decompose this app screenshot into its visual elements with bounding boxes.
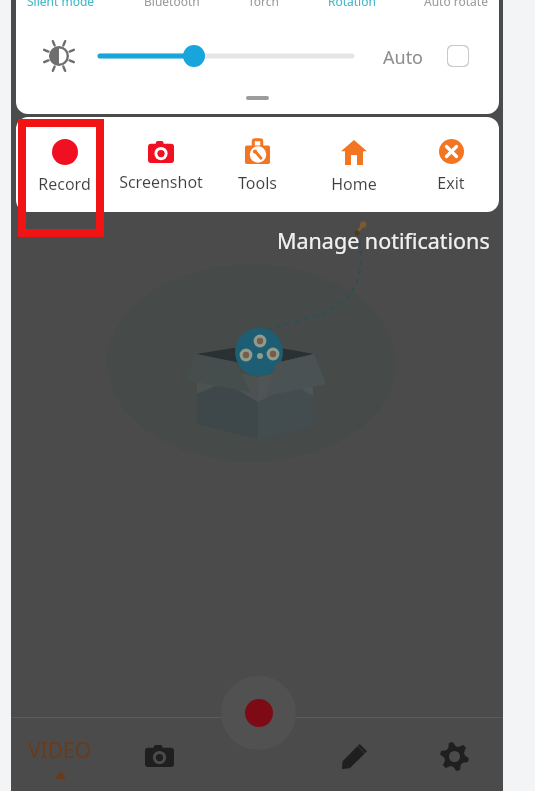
button[interactable]: Start recording (221, 676, 296, 750)
staticText: Home (331, 173, 377, 195)
staticText: Screenshot (119, 171, 203, 193)
button[interactable]: Settings (421, 723, 487, 789)
staticText: Record (38, 173, 91, 195)
staticText: Torch (248, 0, 279, 9)
button[interactable]: Auto brightness (447, 45, 469, 67)
button[interactable]: Record (16, 117, 112, 212)
button[interactable]: Edit (322, 723, 388, 789)
button[interactable]: VIDEO (20, 717, 100, 791)
button[interactable]: Home (306, 117, 402, 212)
button[interactable]: Manage notifications (277, 226, 490, 255)
button[interactable]: Exit (402, 117, 499, 212)
button[interactable]: Photo mode (126, 723, 192, 789)
staticText: Auto rotate (424, 0, 488, 9)
staticText: Exit (437, 172, 465, 194)
staticText: Tools (238, 172, 277, 194)
button[interactable]: Tools (209, 117, 306, 212)
button[interactable]: Screenshot (112, 117, 209, 212)
staticText: Silent mode (27, 0, 95, 9)
staticText: VIDEO (28, 736, 92, 765)
staticText: Bluetooth (144, 0, 200, 9)
staticText: Rotation (328, 0, 376, 9)
staticText: Auto (383, 45, 424, 70)
